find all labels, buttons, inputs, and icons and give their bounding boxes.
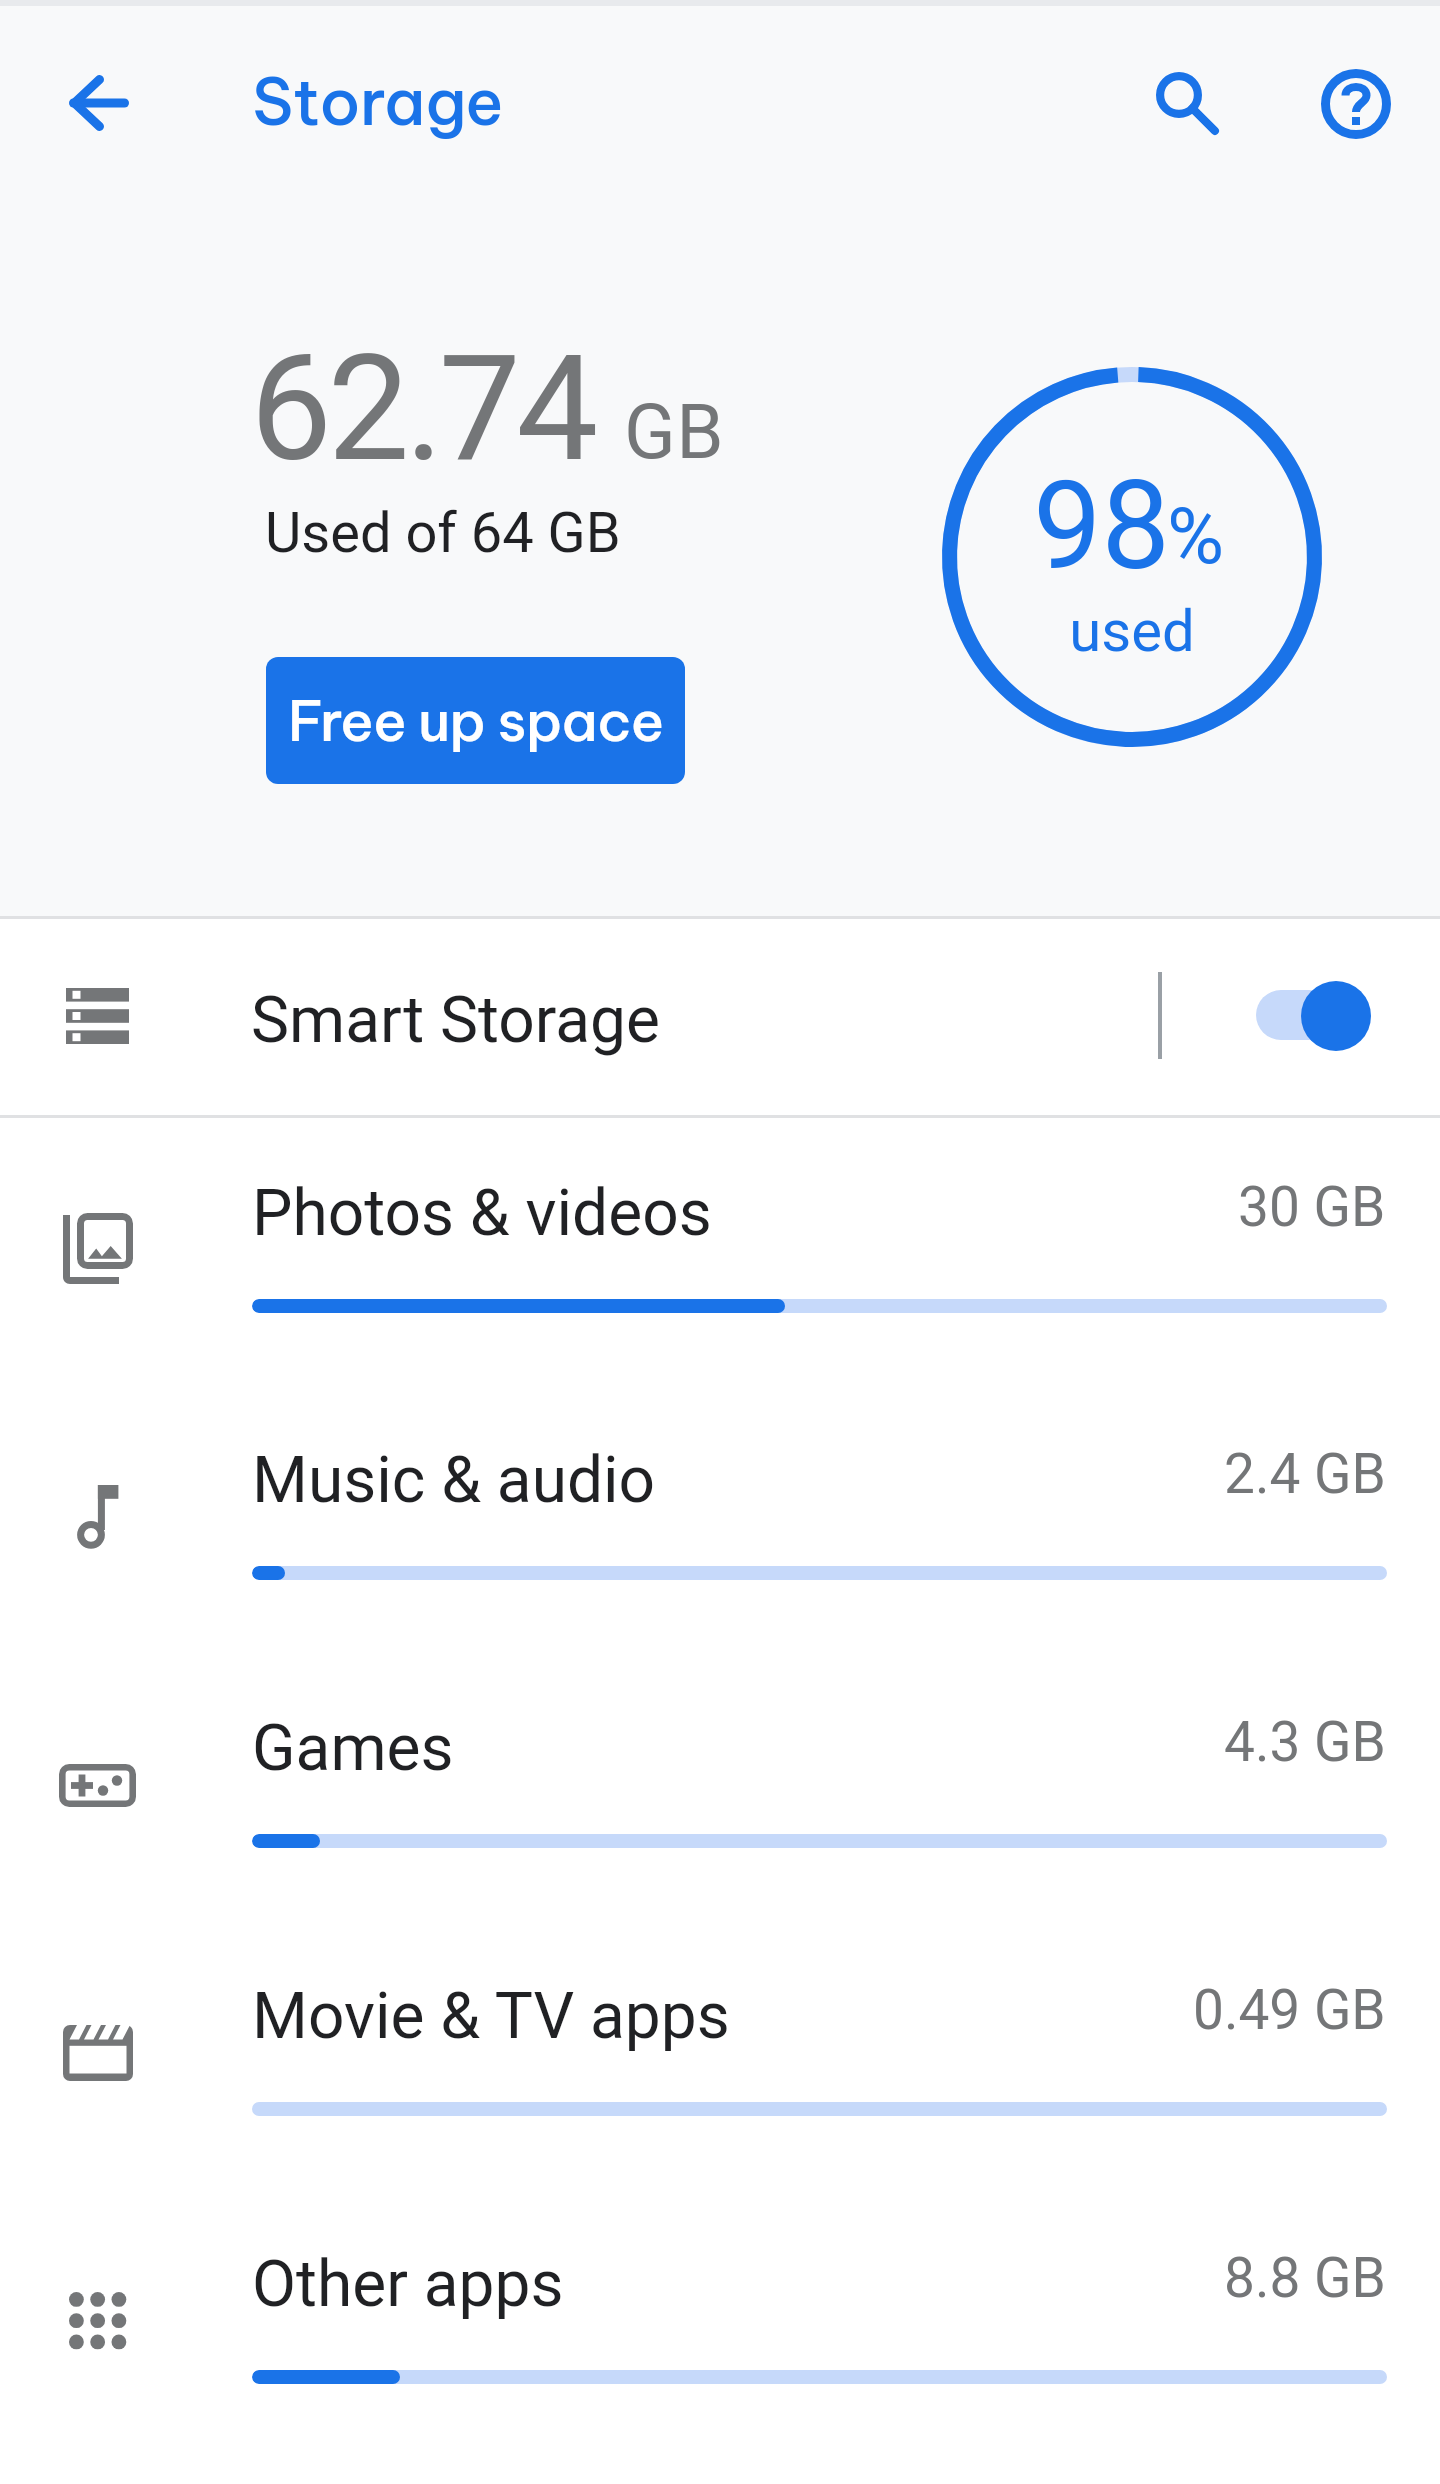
staticText: Storage: [252, 61, 504, 142]
staticText: Smart Storage: [251, 983, 660, 1058]
button[interactable]: Photos & videos: [0, 1123, 1440, 1389]
staticText: 2.4 GB: [1224, 1442, 1386, 1506]
staticText: Used of 64 GB: [265, 500, 621, 566]
staticText: Games: [252, 1711, 454, 1786]
button[interactable]: Games: [0, 1658, 1440, 1924]
button[interactable]: Search: [1114, 30, 1244, 160]
button[interactable]: Back: [33, 37, 165, 169]
button[interactable]: Smart Storage toggle: [1230, 951, 1410, 1081]
staticText: Music & audio: [252, 1443, 656, 1518]
staticText: Movie & TV apps: [252, 1979, 730, 2054]
staticText: 8.8 GB: [1224, 2246, 1386, 2310]
button[interactable]: Free up space: [266, 657, 685, 784]
staticText: 62.74: [250, 324, 594, 495]
button[interactable]: Smart Storage: [0, 919, 1440, 1112]
staticText: Other apps: [252, 2247, 564, 2322]
staticText: 30 GB: [1238, 1175, 1386, 1239]
staticText: 4.3 GB: [1224, 1710, 1386, 1774]
staticText: GB: [624, 387, 725, 476]
button[interactable]: Movie & TV apps: [0, 1926, 1440, 2192]
staticText: 0.49 GB: [1193, 1978, 1386, 2042]
staticText: Free up space: [288, 685, 664, 756]
button[interactable]: Music & audio: [0, 1390, 1440, 1656]
staticText: used: [942, 597, 1322, 665]
button[interactable]: Other apps: [0, 2194, 1440, 2460]
staticText: Photos & videos: [252, 1176, 712, 1251]
staticText: %: [1167, 491, 1225, 582]
button[interactable]: Help: [1291, 39, 1421, 169]
staticText: 98: [1033, 455, 1171, 598]
